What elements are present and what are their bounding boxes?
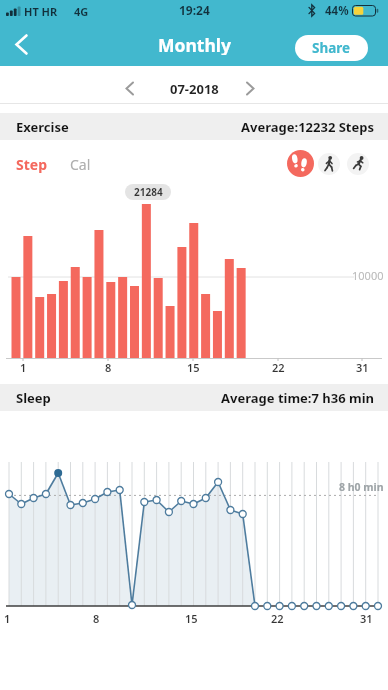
button[interactable]: Cal xyxy=(70,152,102,176)
staticText: Cal xyxy=(70,155,91,174)
staticText: 44% xyxy=(325,3,349,18)
staticText: Monthly xyxy=(158,33,231,55)
staticText: 1 xyxy=(4,611,11,624)
staticText: 31 xyxy=(360,611,373,624)
staticText: 15 xyxy=(187,360,200,373)
staticText: Step xyxy=(16,155,47,174)
button[interactable] xyxy=(237,76,263,100)
staticText: 15 xyxy=(185,611,198,624)
staticText: Exercise xyxy=(16,118,69,136)
staticText: 19:24 xyxy=(179,2,210,17)
staticText: 8 xyxy=(93,611,100,624)
button[interactable] xyxy=(8,30,34,58)
staticText: 22 xyxy=(271,611,284,624)
staticText: 22 xyxy=(272,360,285,373)
staticText: 8 h0 min xyxy=(339,480,384,493)
staticText: 1 xyxy=(20,360,27,373)
button[interactable] xyxy=(287,150,314,177)
staticText: HT HR xyxy=(24,4,58,18)
staticText: Sleep xyxy=(16,389,51,407)
staticText: 8 xyxy=(105,360,112,373)
staticText: 07-2018 xyxy=(170,80,219,96)
staticText: Average time:7 h36 min xyxy=(221,389,375,407)
staticText: Average:12232 Steps xyxy=(241,118,375,136)
button[interactable]: Step xyxy=(16,152,56,176)
staticText: 10000 xyxy=(352,268,384,282)
staticText: 31 xyxy=(356,360,369,373)
button[interactable] xyxy=(318,153,340,175)
button[interactable]: Share xyxy=(295,35,368,61)
button[interactable] xyxy=(347,153,369,175)
staticText: Share xyxy=(312,39,351,57)
staticText: 21284 xyxy=(134,185,163,199)
button[interactable] xyxy=(116,76,142,100)
staticText: 4G xyxy=(74,4,89,18)
